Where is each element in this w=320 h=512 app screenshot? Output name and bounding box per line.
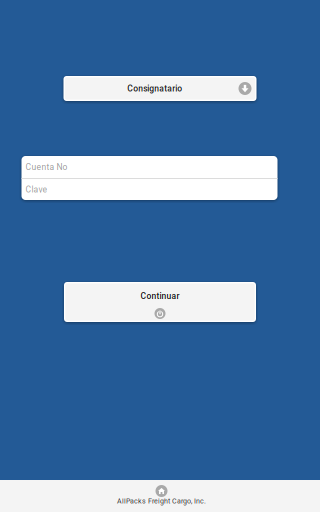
staticText: Clave [25,184,47,194]
button[interactable]: Consignatario [63,76,256,101]
staticText: Continuar [140,291,179,301]
staticText: Cuenta No [25,162,67,172]
staticText: AllPacks Freight Cargo, Inc. [117,497,206,505]
staticText: Consignatario [127,83,182,93]
button[interactable]: Continuar [64,282,256,322]
button[interactable]: Clave [21,179,277,200]
button[interactable]: Cuenta No [21,156,277,178]
button[interactable]: AllPacks Freight Cargo, Inc. [0,480,320,512]
